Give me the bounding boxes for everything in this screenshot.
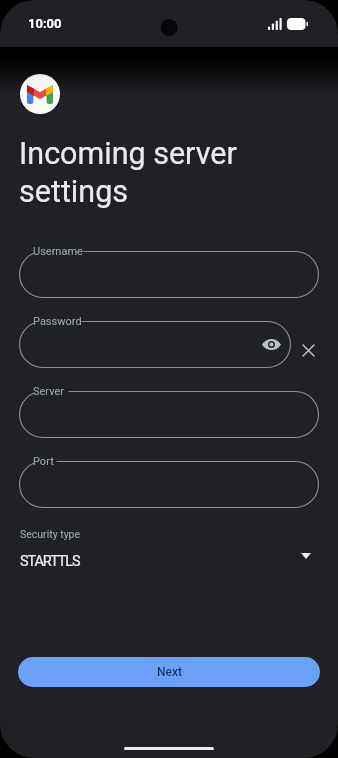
staticText: STARTTLS bbox=[20, 553, 80, 570]
staticText: Security type bbox=[20, 528, 81, 540]
staticText: Port bbox=[33, 455, 54, 468]
button[interactable]: Gmail bbox=[20, 74, 60, 114]
button[interactable]: Clear bbox=[292, 334, 324, 366]
staticText: Next bbox=[157, 665, 182, 679]
button[interactable]: Show password bbox=[255, 328, 287, 360]
staticText: 10:00 bbox=[28, 16, 62, 31]
button[interactable] bbox=[19, 321, 291, 368]
button[interactable] bbox=[19, 251, 319, 298]
button[interactable]: Security type bbox=[0, 522, 338, 578]
staticText: Incoming server settings bbox=[19, 136, 237, 210]
button[interactable] bbox=[19, 461, 319, 508]
button[interactable] bbox=[19, 391, 319, 438]
staticText: Server bbox=[33, 385, 65, 398]
staticText: Password bbox=[33, 315, 82, 328]
staticText: Username bbox=[33, 245, 83, 258]
button[interactable]: Next bbox=[18, 657, 320, 687]
